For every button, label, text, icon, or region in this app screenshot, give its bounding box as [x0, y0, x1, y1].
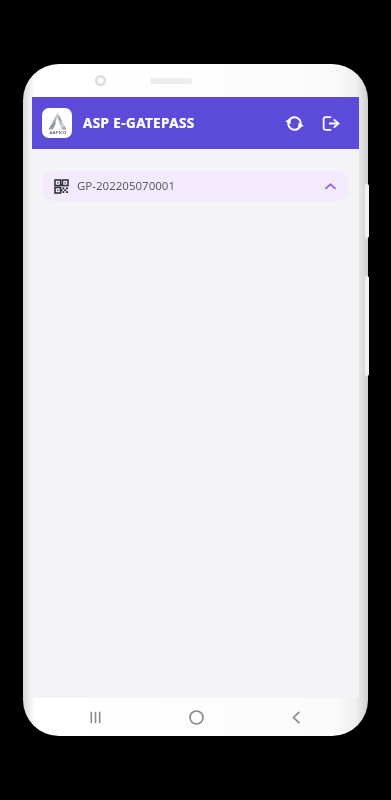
- button[interactable]: Back: [246, 701, 346, 733]
- staticText: GP-202205070001: [77, 178, 175, 194]
- staticText: AAPICO: [49, 130, 67, 136]
- staticText: ASP E-GATEPASS: [83, 114, 195, 132]
- button[interactable]: Home: [146, 701, 246, 733]
- button[interactable]: Refresh: [277, 106, 311, 140]
- button[interactable]: Logout: [313, 106, 347, 140]
- button[interactable]: GP-202205070001: [43, 171, 348, 201]
- button[interactable]: Recent apps: [45, 701, 146, 733]
